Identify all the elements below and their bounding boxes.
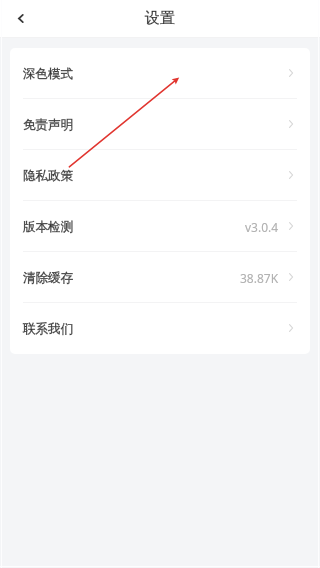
button[interactable]: 免责声明 bbox=[10, 99, 310, 150]
staticText: 免责声明 bbox=[23, 117, 73, 133]
staticText: 联系我们 bbox=[23, 321, 73, 337]
button[interactable]: 版本检测 bbox=[10, 201, 310, 252]
staticText: 清除缓存 bbox=[23, 270, 73, 286]
button[interactable]: 深色模式 bbox=[10, 48, 310, 99]
staticText: 隐私政策 bbox=[23, 168, 73, 184]
staticText: 设置 bbox=[145, 9, 175, 28]
staticText: 38.87K bbox=[240, 270, 279, 286]
staticText: 版本检测 bbox=[23, 219, 73, 235]
staticText: 免责声明 bbox=[23, 117, 73, 133]
button[interactable]: Back bbox=[0, 0, 40, 37]
button[interactable]: 联系我们 bbox=[10, 303, 310, 354]
button[interactable]: 隐私政策 bbox=[10, 150, 310, 201]
staticText: 版本检测 bbox=[23, 219, 73, 235]
staticText: 清除缓存 bbox=[23, 270, 73, 286]
staticText: 深色模式 bbox=[23, 66, 73, 82]
staticText: v3.0.4 bbox=[245, 219, 279, 235]
staticText: 设置 bbox=[145, 9, 175, 28]
button[interactable]: 清除缓存 bbox=[10, 252, 310, 303]
staticText: 联系我们 bbox=[23, 321, 73, 337]
staticText: 深色模式 bbox=[23, 66, 73, 82]
staticText: 隐私政策 bbox=[23, 168, 73, 184]
